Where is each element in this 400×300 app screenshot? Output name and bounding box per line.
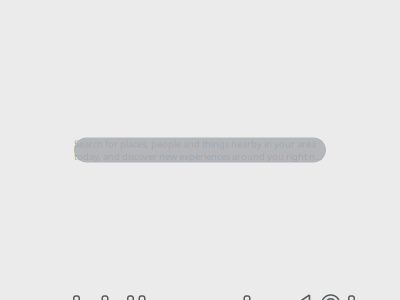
- staticText: Search for places, people and things nea…: [74, 138, 326, 162]
